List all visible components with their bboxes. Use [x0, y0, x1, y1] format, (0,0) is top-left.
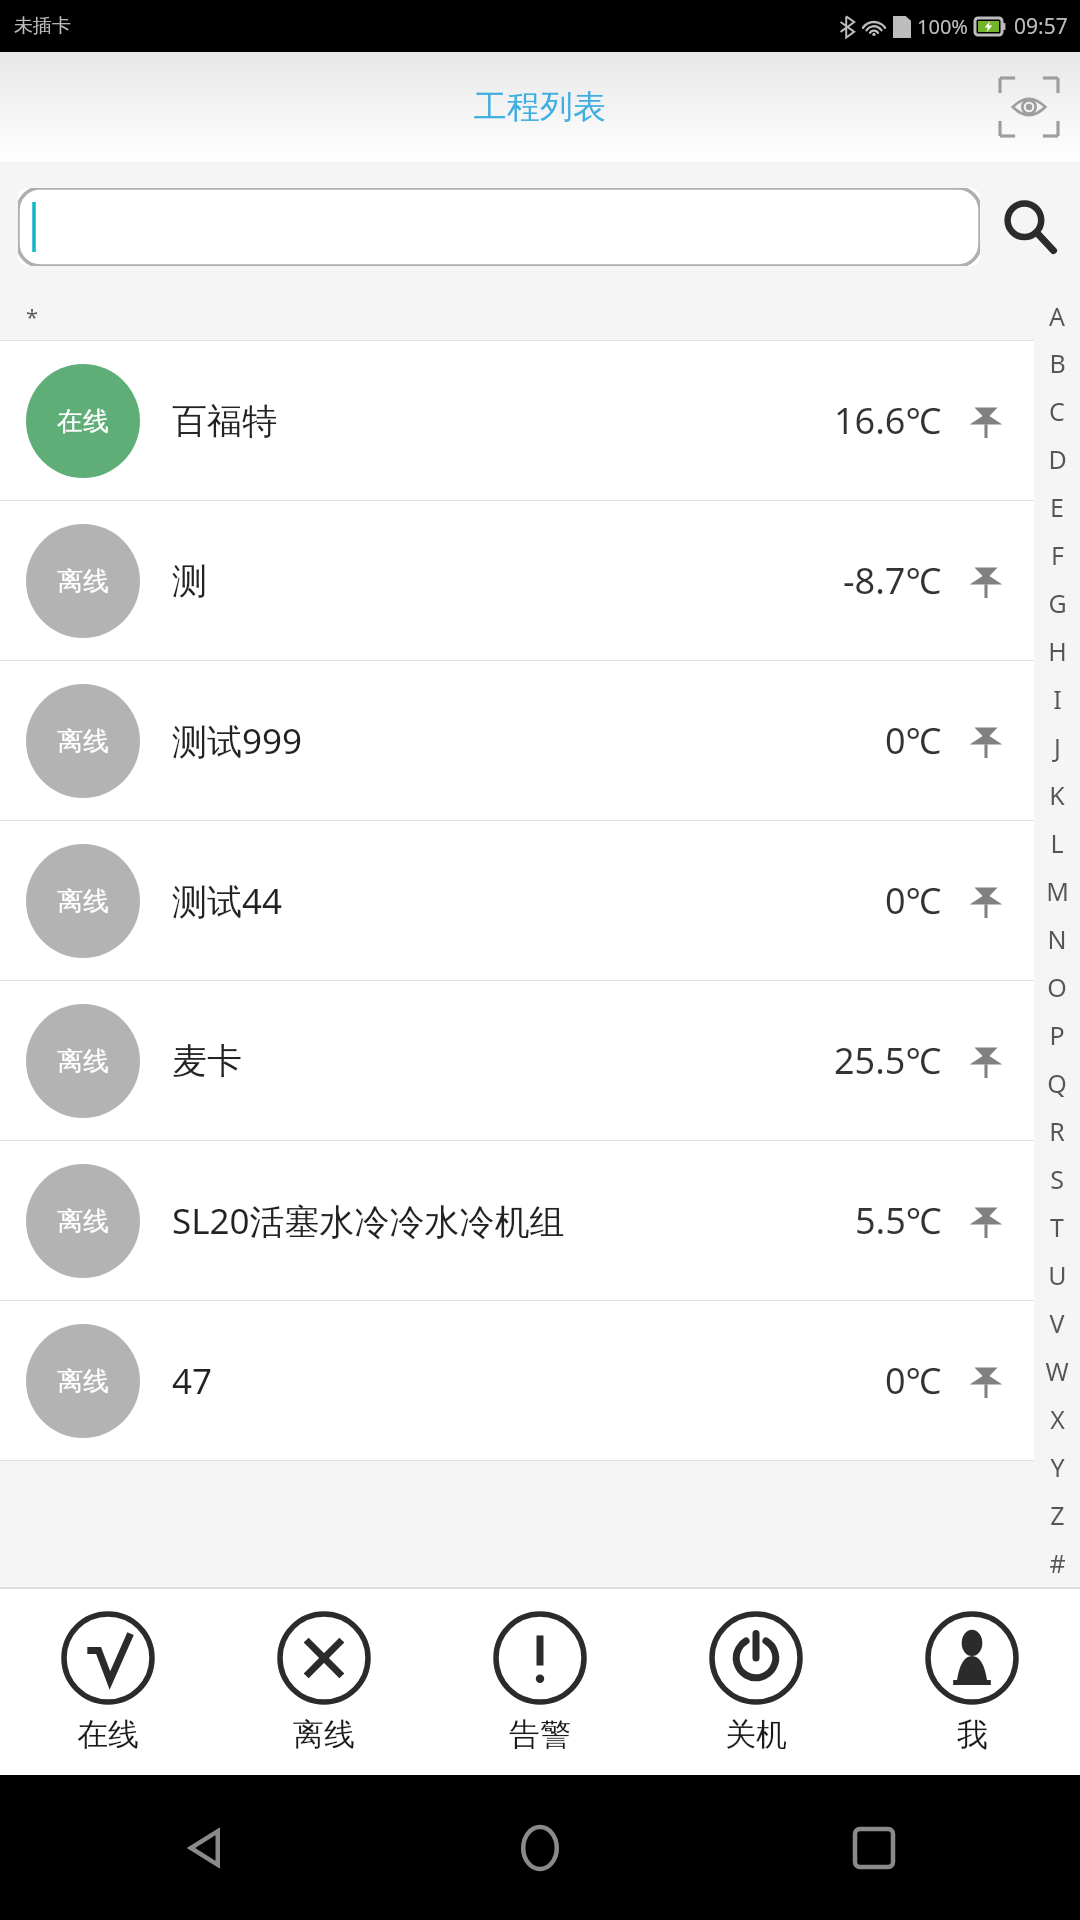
button[interactable] — [18, 188, 980, 266]
staticText: 测 — [172, 559, 843, 603]
button[interactable]: Search — [998, 195, 1062, 259]
button[interactable]: L — [1034, 819, 1080, 867]
button[interactable]: A — [1034, 292, 1080, 339]
staticText: 09:57 — [1014, 12, 1068, 41]
button[interactable]: E — [1034, 483, 1080, 531]
staticText: N — [1047, 922, 1067, 956]
button[interactable]: Y — [1034, 1443, 1080, 1491]
button[interactable]: K — [1034, 771, 1080, 819]
staticText: # — [1049, 1546, 1066, 1580]
button[interactable]: S — [1034, 1155, 1080, 1203]
button[interactable]: T — [1034, 1203, 1080, 1251]
button[interactable]: 离线 — [0, 821, 1034, 981]
staticText: D — [1048, 442, 1067, 476]
staticText: B — [1049, 346, 1066, 380]
button[interactable]: I — [1034, 675, 1080, 723]
button[interactable]: H — [1034, 627, 1080, 675]
button[interactable]: M — [1034, 867, 1080, 915]
staticText: J — [1054, 730, 1061, 764]
staticText: S — [1050, 1162, 1064, 1196]
button[interactable]: F — [1034, 531, 1080, 579]
button[interactable]: R — [1034, 1107, 1080, 1155]
button[interactable]: W — [1034, 1347, 1080, 1395]
button[interactable]: 我 — [864, 1589, 1080, 1775]
button[interactable]: 在线 — [0, 1589, 216, 1775]
staticText: T — [1050, 1210, 1064, 1244]
staticText: 离线 — [57, 1365, 109, 1398]
staticText: -8.7℃ — [843, 556, 942, 605]
button[interactable]: C — [1034, 387, 1080, 435]
staticText: H — [1048, 634, 1067, 668]
staticText: 47 — [172, 1357, 885, 1405]
staticText: 在线 — [77, 1715, 139, 1754]
staticText: C — [1049, 394, 1065, 428]
staticText: 我 — [957, 1715, 988, 1754]
button[interactable]: J — [1034, 723, 1080, 771]
button[interactable]: Q — [1034, 1059, 1080, 1107]
button[interactable]: N — [1034, 915, 1080, 963]
staticText: A — [1049, 299, 1065, 333]
staticText: 工程列表 — [474, 86, 606, 128]
staticText: 测试999 — [172, 717, 885, 765]
button[interactable]: Pin — [964, 1199, 1008, 1243]
button[interactable]: Z — [1034, 1491, 1080, 1539]
staticText: 16.6℃ — [834, 396, 942, 445]
staticText: 离线 — [293, 1715, 355, 1754]
button[interactable]: 离线 — [0, 1301, 1034, 1461]
button[interactable]: V — [1034, 1299, 1080, 1347]
staticText: W — [1045, 1354, 1069, 1388]
button[interactable]: Scan — [998, 76, 1060, 138]
staticText: Z — [1050, 1498, 1065, 1532]
button[interactable]: 关机 — [648, 1589, 864, 1775]
staticText: O — [1047, 970, 1067, 1004]
staticText: K — [1049, 778, 1065, 812]
button[interactable]: 在线 — [0, 341, 1034, 501]
staticText: I — [1053, 682, 1062, 716]
button[interactable]: 离线 — [0, 501, 1034, 661]
button[interactable]: Pin — [964, 559, 1008, 603]
staticText: 5.5℃ — [855, 1196, 942, 1245]
staticText: 百福特 — [172, 399, 834, 443]
button[interactable]: P — [1034, 1011, 1080, 1059]
button[interactable]: 离线 — [0, 981, 1034, 1141]
staticText: 麦卡 — [172, 1039, 834, 1083]
staticText: 在线 — [57, 405, 109, 438]
staticText: * — [26, 301, 39, 331]
button[interactable]: Pin — [964, 879, 1008, 923]
button[interactable]: U — [1034, 1251, 1080, 1299]
button[interactable]: Pin — [964, 1359, 1008, 1403]
staticText: 离线 — [57, 1045, 109, 1078]
staticText: 离线 — [57, 725, 109, 758]
staticText: X — [1050, 1402, 1065, 1436]
button[interactable]: # — [1034, 1539, 1080, 1587]
staticText: L — [1050, 826, 1064, 860]
button[interactable]: 离线 — [0, 661, 1034, 821]
button[interactable]: Home — [504, 1812, 576, 1884]
staticText: F — [1051, 538, 1064, 572]
staticText: M — [1046, 874, 1069, 908]
button[interactable]: X — [1034, 1395, 1080, 1443]
button[interactable]: Pin — [964, 399, 1008, 443]
staticText: Q — [1047, 1066, 1067, 1100]
button[interactable]: 离线 — [216, 1589, 432, 1775]
button[interactable]: 告警 — [432, 1589, 648, 1775]
staticText: V — [1049, 1306, 1065, 1340]
staticText: 离线 — [57, 885, 109, 918]
button[interactable]: D — [1034, 435, 1080, 483]
button[interactable]: G — [1034, 579, 1080, 627]
staticText: 0℃ — [885, 1356, 942, 1405]
button[interactable]: 离线 — [0, 1141, 1034, 1301]
staticText: 测试44 — [172, 877, 885, 925]
button[interactable]: Recents — [838, 1812, 910, 1884]
button[interactable]: Pin — [964, 719, 1008, 763]
button[interactable]: Back — [170, 1812, 242, 1884]
button[interactable]: B — [1034, 339, 1080, 387]
staticText: 未插卡 — [14, 14, 71, 38]
staticText: 告警 — [509, 1715, 571, 1754]
staticText: 离线 — [57, 1205, 109, 1238]
button[interactable]: O — [1034, 963, 1080, 1011]
staticText: 0℃ — [885, 876, 942, 925]
button[interactable]: Pin — [964, 1039, 1008, 1083]
staticText: R — [1049, 1114, 1065, 1148]
staticText: 0℃ — [885, 716, 942, 765]
